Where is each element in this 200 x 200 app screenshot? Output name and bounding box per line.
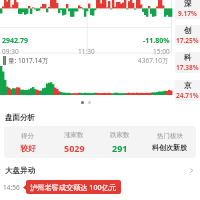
- staticText: 14:56: [3, 183, 20, 192]
- button[interactable]: 涨家数: [51, 126, 97, 158]
- staticText: 盘面分析: [5, 113, 35, 122]
- staticText: 较好: [20, 143, 36, 153]
- button[interactable]: 大盘异动: [5, 164, 195, 176]
- staticText: 涨家数: [64, 131, 84, 139]
- staticText: 得分: [21, 132, 34, 140]
- staticText: -11.80%: [143, 36, 170, 46]
- staticText: 5029: [64, 142, 85, 154]
- staticText: 跌家数: [110, 131, 130, 139]
- other: More: [188, 167, 195, 174]
- button[interactable]: 科: [175, 52, 200, 73]
- staticText: 创: [184, 26, 192, 35]
- staticText: 京: [184, 81, 192, 90]
- staticText: 291: [112, 142, 128, 154]
- button[interactable]: 得分: [4, 126, 51, 158]
- staticText: 大盘异动: [5, 166, 35, 175]
- staticText: 24.71%: [176, 91, 199, 100]
- button[interactable]: 14:56: [3, 180, 200, 194]
- staticText: 15:00: [153, 47, 170, 56]
- staticText: 11:30: [78, 47, 95, 56]
- staticText: 科: [184, 53, 192, 62]
- staticText: 17.38%: [176, 63, 199, 72]
- staticText: 量: 1017.14万: [8, 56, 49, 65]
- button[interactable]: 跌家数: [97, 126, 143, 158]
- staticText: 4367.10万: [138, 56, 169, 65]
- staticText: 9.17%: [178, 9, 197, 18]
- staticText: 泸州老窖成交额达 100亿元: [30, 182, 117, 192]
- button[interactable]: 热门板块: [143, 126, 196, 158]
- button[interactable]: 京: [175, 80, 200, 101]
- staticText: 09:30: [2, 47, 19, 56]
- staticText: 热门板块: [157, 132, 183, 140]
- staticText: 科创次新股: [152, 143, 187, 152]
- staticText: 2942.79: [2, 36, 28, 46]
- staticText: 深: [184, 0, 192, 8]
- button[interactable]: 深: [175, 0, 200, 19]
- button[interactable]: 创: [175, 25, 200, 45]
- staticText: 17.25%: [176, 36, 199, 45]
